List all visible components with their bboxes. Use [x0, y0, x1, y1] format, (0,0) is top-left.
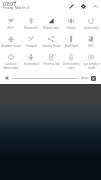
staticText: 07:07	[3, 0, 17, 7]
staticText: Ultra battery saver	[63, 62, 80, 69]
button[interactable]: Edit	[66, 1, 77, 12]
button[interactable]: Floating dot	[41, 51, 61, 66]
button[interactable]: Ultra battery saver	[61, 51, 81, 69]
button[interactable]: Airplane mode	[0, 33, 21, 48]
button[interactable]: Location information	[0, 51, 21, 69]
button[interactable]: NFC	[81, 33, 101, 48]
staticText: Hotspot	[26, 44, 37, 48]
staticText: Mobile data	[43, 26, 59, 30]
staticText: Bluetooth	[24, 26, 38, 30]
button[interactable]: Settings	[77, 1, 89, 12]
staticText: Location information	[3, 62, 19, 69]
staticText: Nearby Share	[42, 44, 61, 48]
staticText: Friday, March 3	[3, 5, 29, 10]
staticText: Airplane mode	[1, 44, 21, 48]
staticText: Auto	[81, 76, 89, 80]
staticText: NFC	[88, 44, 94, 48]
staticText: Floating dot	[43, 62, 60, 66]
staticText: Flashlight	[65, 44, 78, 48]
staticText: Screenshot	[24, 62, 39, 66]
button[interactable]: Hotspot	[21, 33, 41, 48]
staticText: Vibrate	[66, 26, 76, 30]
button[interactable]: Autorotate	[81, 15, 101, 30]
button[interactable]: Mobile data	[41, 15, 61, 30]
button[interactable]: Eye comfort mode	[81, 51, 101, 69]
staticText: Autorotate	[84, 26, 99, 30]
button[interactable]: Nearby Share	[41, 33, 61, 48]
button[interactable]: Screenshot	[21, 51, 41, 66]
staticText: Wi-Fi	[7, 26, 14, 30]
button[interactable]: Wi-Fi	[0, 15, 21, 30]
button[interactable]: Vibrate	[61, 15, 81, 30]
button[interactable]: Auto brightness	[91, 76, 96, 81]
button[interactable]: Collapse panel	[89, 1, 101, 12]
staticText: Eye comfort mode	[83, 62, 100, 69]
button[interactable]: Bluetooth	[21, 15, 41, 30]
button[interactable]: Flashlight	[61, 33, 81, 48]
